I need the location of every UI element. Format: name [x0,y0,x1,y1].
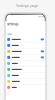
button[interactable] [5,61,46,66]
staticText: Settings page [16,3,38,8]
button[interactable] [5,85,46,90]
button[interactable] [5,73,46,78]
button[interactable] [5,37,46,42]
button[interactable] [5,49,46,54]
button[interactable] [5,43,46,48]
staticText: settings [7,22,18,26]
button[interactable] [5,79,46,84]
button[interactable] [5,67,46,72]
button[interactable] [5,55,46,60]
